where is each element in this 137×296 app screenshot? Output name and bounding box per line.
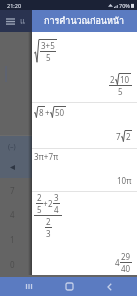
button[interactable]: Recent apps [15,277,41,296]
staticText: 10 [120,74,130,85]
staticText: 21:20 [7,2,22,9]
staticText: 3π+7π [34,151,59,162]
staticText: 50 [55,107,65,118]
staticText: 10π [117,175,132,186]
button[interactable]: 2 [32,192,137,275]
staticText: 3+5 [41,40,55,51]
staticText: 5 [118,86,123,97]
button[interactable]: Back [96,277,122,296]
button[interactable]: Home [56,277,82,296]
staticText: 5 [46,52,51,63]
staticText: 4 [54,204,59,215]
staticText: 3 [46,228,51,239]
staticText: 40 [121,263,131,274]
staticText: 2 [126,131,131,142]
staticText: 1 [10,234,15,245]
staticText: 2 [46,216,51,227]
staticText: 7 [116,131,121,142]
staticText: 3 [54,192,59,203]
staticText: 4 [115,257,120,268]
staticText: 0 [10,259,15,270]
staticText: 7 [10,185,15,196]
staticText: + [45,107,50,118]
staticText: (–) [8,142,16,152]
staticText: + [43,198,48,209]
button[interactable]: 3π+7π [32,149,137,192]
staticText: 2 [37,192,42,203]
button[interactable]: การคำนวณก่อนหน้า [32,10,137,32]
staticText: 8 [39,107,44,118]
staticText: 70% [119,2,130,9]
staticText: 4 [10,209,15,220]
staticText: แ [20,15,26,28]
staticText: 29 [121,251,131,262]
staticText: การคำนวณก่อนหน้า [44,14,125,28]
button[interactable]: 3+5 [32,32,137,103]
button[interactable]: 8 [32,103,137,149]
staticText: 2 [48,198,53,209]
staticText: 5 [37,204,42,215]
staticText: 2 [110,74,115,85]
